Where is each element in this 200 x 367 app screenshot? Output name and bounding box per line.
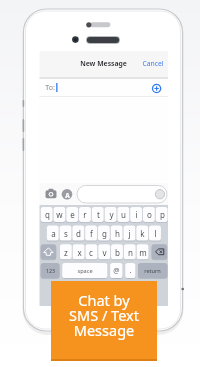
staticText: b <box>115 247 120 258</box>
staticText: j <box>128 228 131 239</box>
staticText: Cancel <box>142 59 164 68</box>
button[interactable]: Chat by SMS / Text Message <box>51 281 157 361</box>
staticText: v <box>102 247 107 258</box>
staticText: a <box>51 228 56 239</box>
staticText: t <box>97 209 100 220</box>
staticText: space <box>77 267 93 275</box>
staticText: c <box>89 247 93 258</box>
staticText: y <box>109 209 114 220</box>
staticText: u <box>121 209 126 220</box>
staticText: return <box>144 267 161 275</box>
staticText: s <box>64 228 68 239</box>
staticText: New Message <box>80 59 127 68</box>
staticText: o <box>147 209 152 220</box>
staticText: h <box>115 228 120 239</box>
staticText: e <box>70 209 75 220</box>
staticText: @ <box>113 266 120 276</box>
staticText: . <box>129 265 132 275</box>
staticText: q <box>45 209 50 220</box>
staticText: x <box>77 247 82 258</box>
button[interactable]: Cancel <box>139 57 167 69</box>
staticText: n <box>128 247 133 258</box>
staticText: g <box>102 228 107 239</box>
staticText: A <box>65 191 70 198</box>
staticText: k <box>140 228 145 239</box>
staticText: i <box>135 209 138 220</box>
staticText: l <box>154 228 157 239</box>
staticText: To: <box>45 83 55 93</box>
staticText: w <box>56 209 63 220</box>
staticText: f <box>90 228 93 239</box>
staticText: p <box>160 209 165 220</box>
staticText: z <box>64 247 68 258</box>
staticText: Chat by SMS / Text Message <box>69 290 139 340</box>
staticText: d <box>76 228 81 239</box>
staticText: r <box>83 209 87 220</box>
staticText: m <box>139 247 147 258</box>
staticText: 123 <box>46 267 55 274</box>
